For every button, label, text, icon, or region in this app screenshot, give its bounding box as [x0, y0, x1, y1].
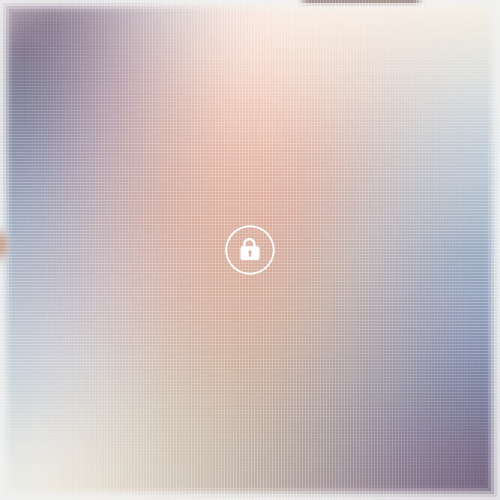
button[interactable]: Unlock [218, 218, 282, 282]
